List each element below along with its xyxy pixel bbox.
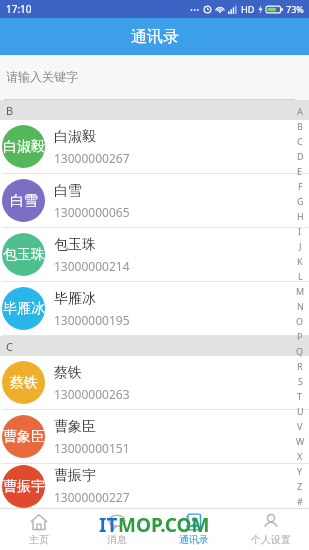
staticText: T: [297, 390, 303, 402]
staticText: E: [297, 165, 303, 177]
button[interactable]: 毕雁冰: [0, 282, 309, 336]
staticText: 蔡铁: [10, 374, 38, 392]
staticText: 曹振宇: [54, 467, 96, 485]
staticText: Y: [297, 465, 303, 477]
button[interactable]: 白雪: [0, 174, 309, 228]
staticText: 主页: [29, 533, 49, 546]
button[interactable]: 蔡铁: [0, 356, 309, 410]
staticText: 通讯录: [179, 533, 209, 546]
staticText: B: [6, 103, 14, 118]
staticText: C: [6, 339, 13, 354]
staticText: R: [297, 360, 303, 372]
staticText: Z: [297, 480, 303, 492]
staticText: 包玉珠: [54, 236, 96, 254]
staticText: B: [297, 120, 303, 132]
staticText: 73%: [286, 3, 304, 15]
button[interactable]: 主页: [0, 508, 78, 550]
button[interactable]: Alphabet index: [292, 103, 308, 508]
staticText: K: [297, 255, 303, 267]
staticText: 毕雁冰: [3, 300, 45, 318]
button[interactable]: 个人设置: [232, 508, 309, 550]
staticText: 消息: [107, 533, 127, 546]
staticText: 白雪: [10, 192, 38, 210]
button[interactable]: 曹振宇: [0, 464, 309, 508]
staticText: 13000000065: [54, 204, 130, 220]
staticText: 毕雁冰: [54, 290, 96, 308]
button[interactable]: 请输入关键字: [0, 55, 309, 100]
staticText: I: [298, 225, 302, 237]
staticText: S: [298, 375, 303, 387]
staticText: MOP.COM: [118, 512, 210, 538]
button[interactable]: 曹象臣: [0, 410, 309, 464]
staticText: O: [296, 315, 304, 327]
staticText: P: [297, 330, 303, 342]
staticText: 请输入关键字: [6, 69, 78, 84]
staticText: U: [297, 405, 304, 417]
staticText: 白淑毅: [3, 138, 45, 156]
staticText: D: [297, 150, 304, 162]
staticText: 13000000227: [54, 489, 130, 505]
staticText: 13000000214: [54, 258, 130, 274]
staticText: IT: [99, 512, 118, 538]
staticText: M: [296, 285, 305, 297]
staticText: C: [297, 135, 303, 147]
staticText: 13000000195: [54, 312, 130, 328]
staticText: A: [297, 105, 303, 117]
staticText: N: [297, 300, 304, 312]
staticText: 个人设置: [251, 533, 291, 546]
staticText: 白淑毅: [54, 128, 96, 146]
staticText: 包玉珠: [3, 246, 45, 264]
staticText: HD: [241, 3, 255, 15]
staticText: 17:10: [6, 2, 32, 16]
staticText: 曹振宇: [3, 478, 45, 496]
staticText: 13000000267: [54, 150, 130, 166]
staticText: G: [297, 195, 304, 207]
button[interactable]: 通讯录: [155, 508, 232, 550]
staticText: 13000000263: [54, 386, 130, 402]
button[interactable]: 消息: [78, 508, 155, 550]
staticText: 白雪: [54, 182, 82, 200]
staticText: V: [297, 420, 303, 432]
staticText: #: [297, 495, 303, 507]
staticText: 通讯录: [131, 27, 179, 47]
staticText: X: [297, 450, 303, 462]
button[interactable]: 包玉珠: [0, 228, 309, 282]
staticText: W: [296, 435, 305, 447]
staticText: L: [298, 270, 303, 282]
staticText: 曹象臣: [54, 418, 96, 436]
staticText: 蔡铁: [54, 364, 82, 382]
staticText: J: [299, 240, 302, 252]
button[interactable]: 白淑毅: [0, 120, 309, 174]
staticText: H: [297, 210, 304, 222]
staticText: 曹象臣: [3, 428, 45, 446]
staticText: F: [298, 180, 303, 192]
staticText: 13000000151: [54, 440, 130, 456]
staticText: Q: [296, 345, 304, 357]
